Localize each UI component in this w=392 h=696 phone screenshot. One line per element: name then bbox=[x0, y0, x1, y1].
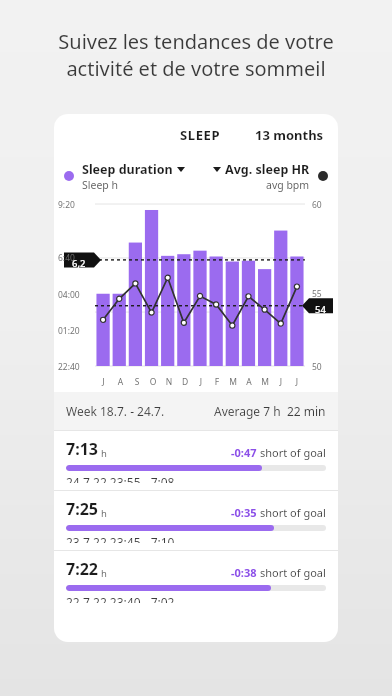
staticText: 7:13 bbox=[66, 438, 98, 460]
staticText: activité et de votre sommeil bbox=[24, 55, 368, 82]
staticText: 60 bbox=[312, 199, 336, 211]
staticText: Avg. sleep HR bbox=[225, 161, 310, 178]
staticText: J bbox=[273, 376, 289, 388]
staticText: 22.7.22 23:40 - 7:02 bbox=[66, 594, 175, 603]
staticText: 13 months bbox=[255, 126, 324, 144]
staticText: 54 bbox=[315, 303, 326, 316]
staticText: S bbox=[129, 376, 145, 388]
staticText: Sleep duration bbox=[82, 161, 173, 178]
button[interactable]: 13 months bbox=[251, 124, 328, 146]
staticText: J bbox=[95, 376, 112, 388]
button[interactable]: Avg. sleep HR bbox=[195, 161, 310, 192]
staticText: D bbox=[177, 376, 193, 388]
staticText: 01:20 bbox=[58, 325, 92, 337]
button[interactable]: 7:25 bbox=[54, 491, 338, 550]
button[interactable]: Sleep duration bbox=[82, 161, 185, 192]
staticText: M bbox=[257, 376, 273, 388]
staticText: Week 18.7. - 24.7. bbox=[66, 403, 165, 419]
staticText: 7:25 bbox=[66, 498, 98, 520]
button[interactable]: 7:13 bbox=[54, 431, 338, 490]
staticText: 7:22 bbox=[66, 558, 98, 580]
staticText: short of goal bbox=[260, 565, 326, 580]
staticText: A bbox=[241, 376, 257, 388]
staticText: Average 7 h 22 min bbox=[214, 403, 326, 419]
staticText: 22:40 bbox=[58, 361, 92, 373]
staticText: 23.7.22 23:45 - 7:10 bbox=[66, 534, 175, 543]
staticText: A bbox=[112, 376, 129, 388]
staticText: F bbox=[209, 376, 225, 388]
staticText: 6:40 bbox=[58, 252, 92, 264]
staticText: -0:38 bbox=[231, 565, 257, 580]
staticText: short of goal bbox=[260, 445, 326, 460]
staticText: M bbox=[225, 376, 241, 388]
staticText: short of goal bbox=[260, 505, 326, 520]
staticText: 9:20 bbox=[58, 199, 92, 211]
staticText: h bbox=[101, 507, 107, 520]
staticText: -0:47 bbox=[231, 445, 257, 460]
staticText: h bbox=[101, 447, 107, 460]
staticText: h bbox=[101, 567, 107, 580]
staticText: 04:00 bbox=[58, 289, 92, 301]
staticText: 6,2 bbox=[72, 257, 86, 270]
staticText: -0:35 bbox=[231, 505, 257, 520]
staticText: 24.7.22 23:55 - 7:08 bbox=[66, 474, 175, 483]
staticText: 50 bbox=[312, 361, 336, 373]
staticText: O bbox=[145, 376, 161, 388]
staticText: 55 bbox=[312, 288, 336, 300]
staticText: N bbox=[161, 376, 177, 388]
staticText: J bbox=[289, 376, 305, 388]
button[interactable]: 7:22 bbox=[54, 551, 338, 610]
staticText: Suivez les tendances de votre bbox=[24, 28, 368, 55]
button[interactable]: Week 18.7. - 24.7. bbox=[54, 392, 338, 430]
staticText: Sleep h bbox=[82, 178, 118, 192]
staticText: avg bpm bbox=[266, 178, 310, 192]
staticText: SLEEP bbox=[180, 126, 221, 144]
staticText: J bbox=[193, 376, 209, 388]
